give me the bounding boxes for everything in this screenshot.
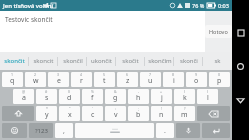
staticText: " <box>69 106 71 111</box>
button[interactable]: ? <box>174 106 195 121</box>
staticText: a <box>22 93 26 103</box>
staticText: ) <box>207 89 209 94</box>
button[interactable]: % <box>82 89 103 104</box>
staticText: # <box>45 89 48 94</box>
staticText: m <box>181 110 188 120</box>
button[interactable]: Hide keyboard <box>232 92 249 109</box>
staticText: l <box>207 93 209 103</box>
staticText: j <box>161 93 163 103</box>
button[interactable]: 5 <box>94 72 115 87</box>
staticText: ukončit <box>91 57 112 65</box>
button[interactable]: Emoji <box>2 123 27 138</box>
staticText: * <box>46 106 48 111</box>
staticText: i <box>173 76 175 86</box>
staticText: skončil <box>63 57 83 65</box>
staticText: f <box>91 93 94 103</box>
button[interactable]: Recent apps <box>232 24 249 41</box>
staticText: ? <box>184 106 186 111</box>
staticText: s <box>45 93 49 103</box>
button[interactable]: skonči <box>174 52 203 70</box>
button[interactable]: skončil <box>58 52 87 70</box>
button[interactable]: Testovic skončit <box>0 11 205 52</box>
button[interactable]: 1 <box>2 72 23 87</box>
staticText: k <box>183 93 187 103</box>
button[interactable]: Enter <box>202 123 230 138</box>
button[interactable]: 6 <box>117 72 138 87</box>
button[interactable]: . <box>156 123 174 138</box>
staticText: - <box>138 89 140 94</box>
staticText: skonči <box>180 57 198 65</box>
staticText: @ <box>22 89 26 94</box>
staticText: , <box>63 126 65 136</box>
button[interactable]: 3 <box>48 72 69 87</box>
staticText: e <box>57 76 61 86</box>
button[interactable]: ! <box>151 106 172 121</box>
staticText: ( <box>184 89 186 94</box>
button[interactable]: ) <box>197 89 218 104</box>
staticText: r <box>80 76 83 86</box>
button[interactable]: 9 <box>186 72 207 87</box>
button[interactable]: " <box>59 106 80 121</box>
button[interactable]: ; <box>128 106 149 121</box>
button[interactable]: Symbols <box>29 123 53 138</box>
staticText: b <box>136 110 141 120</box>
staticText: 7 <box>149 72 152 77</box>
button[interactable]: 2 <box>25 72 46 87</box>
staticText: 8 <box>172 72 175 77</box>
staticText: 6 <box>126 72 129 77</box>
button[interactable]: , <box>55 123 73 138</box>
staticText: skoncit <box>33 57 54 65</box>
button[interactable]: Home <box>232 58 249 75</box>
button[interactable]: skoncit <box>29 52 58 70</box>
staticText: y <box>45 110 49 120</box>
staticText: skočit <box>122 57 139 65</box>
staticText: p <box>217 76 222 86</box>
button[interactable]: 7 <box>140 72 161 87</box>
button[interactable]: Hotovo <box>205 25 232 38</box>
staticText: 3 <box>57 72 60 77</box>
button[interactable]: 8 <box>163 72 184 87</box>
staticText: u <box>148 76 153 86</box>
staticText: 9 <box>195 72 198 77</box>
button[interactable]: Backspace <box>197 106 230 121</box>
button[interactable]: skončím <box>145 52 174 70</box>
button[interactable]: ( <box>174 89 195 104</box>
button[interactable]: $ <box>59 89 80 104</box>
staticText: Testovic skončit <box>5 15 53 24</box>
button[interactable] <box>75 123 154 138</box>
staticText: q <box>10 76 15 86</box>
staticText: h <box>136 93 141 103</box>
staticText: g <box>113 93 118 103</box>
staticText: ; <box>138 106 139 111</box>
button[interactable]: ' <box>82 106 103 121</box>
staticText: d <box>67 93 72 103</box>
button[interactable]: skončit <box>0 52 29 70</box>
button[interactable]: skočit <box>116 52 145 70</box>
button[interactable]: 0 <box>209 72 230 87</box>
button[interactable]: * <box>36 106 57 121</box>
staticText: Hotovo <box>209 28 228 35</box>
button[interactable]: + <box>151 89 172 104</box>
staticText: n <box>159 110 164 120</box>
button[interactable]: & <box>105 89 126 104</box>
button[interactable]: @ <box>13 89 34 104</box>
button[interactable]: Voice input <box>176 123 200 138</box>
button[interactable]: - <box>128 89 149 104</box>
button[interactable]: # <box>36 89 57 104</box>
staticText: . <box>164 126 166 136</box>
staticText: x <box>68 110 72 120</box>
button[interactable]: ukončit <box>87 52 116 70</box>
button[interactable]: : <box>105 106 126 121</box>
staticText: ' <box>92 106 93 111</box>
staticText: 0:03 <box>218 2 229 9</box>
button[interactable]: 4 <box>71 72 92 87</box>
button[interactable]: sk <box>203 52 232 70</box>
button[interactable]: Shift <box>2 106 34 121</box>
staticText: 5 <box>103 72 106 77</box>
staticText: 76 % <box>192 2 205 9</box>
staticText: 4 <box>80 72 83 77</box>
staticText: ! <box>161 106 162 111</box>
staticText: 1 <box>11 72 14 77</box>
staticText: skončím <box>148 57 172 65</box>
staticText: w <box>33 76 39 86</box>
